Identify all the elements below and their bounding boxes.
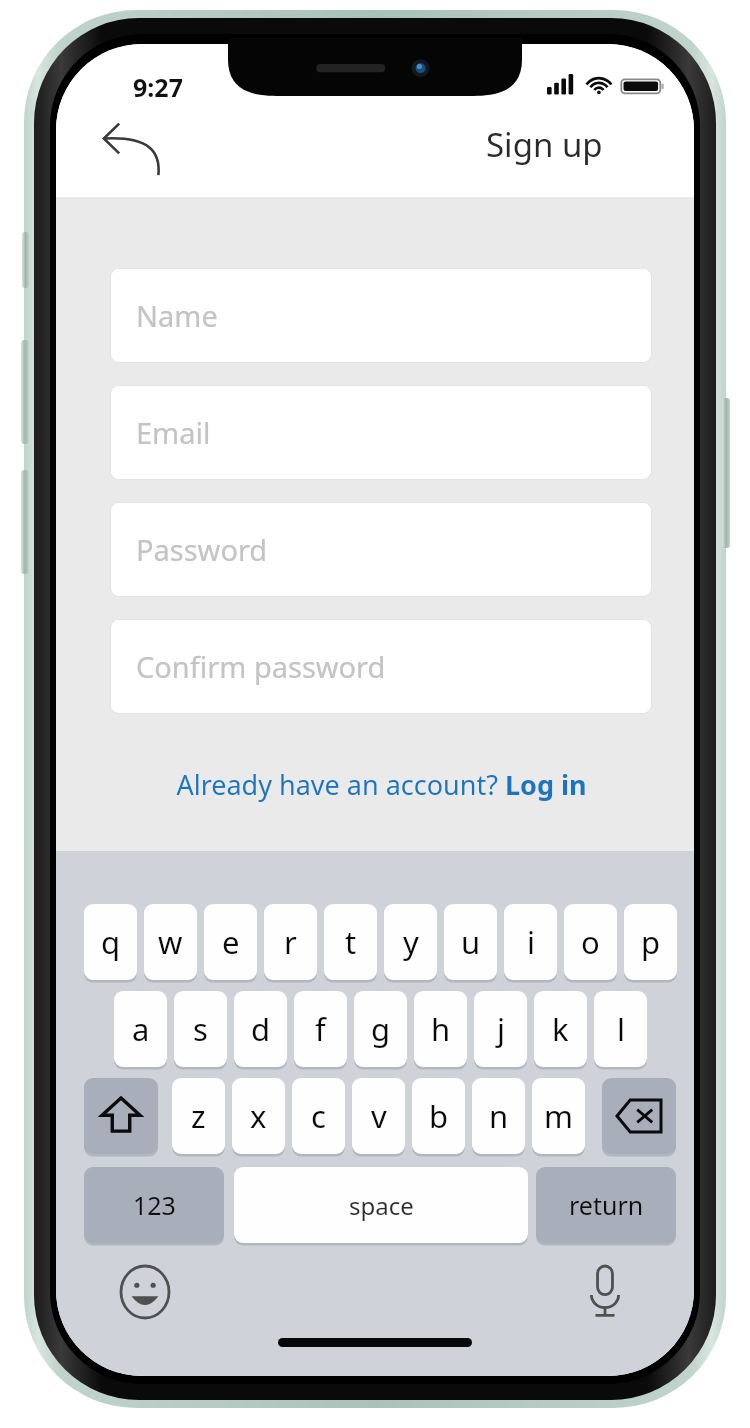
staticText: a [132,1008,150,1050]
staticText: i [527,921,535,963]
button[interactable]: w [144,904,197,980]
button[interactable]: m [532,1078,585,1154]
button[interactable]: x [232,1078,285,1154]
button[interactable]: k [534,991,587,1067]
staticText: Already have an account? Log in [176,766,587,803]
button[interactable]: Name [110,268,652,363]
staticText: 9:27 [133,70,183,104]
staticText: q [101,921,121,963]
button[interactable]: g [354,991,407,1067]
button[interactable]: p [624,904,677,980]
staticText: v [371,1095,387,1137]
staticText: s [193,1008,208,1050]
button[interactable]: r [264,904,317,980]
button[interactable]: e [204,904,257,980]
staticText: g [371,1008,391,1050]
button[interactable]: Back [94,118,164,180]
button[interactable]: c [292,1078,345,1154]
staticText: d [251,1008,271,1050]
button[interactable]: a [114,991,167,1067]
staticText: return [569,1188,644,1222]
button[interactable]: Backspace [602,1078,676,1154]
staticText: x [250,1095,267,1137]
button[interactable]: b [412,1078,465,1154]
button[interactable]: Password [110,502,652,597]
button[interactable]: f [294,991,347,1067]
button[interactable]: o [564,904,617,980]
button[interactable]: s [174,991,227,1067]
staticText: Name [136,296,218,335]
staticText: Confirm password [136,647,386,686]
button[interactable]: v [352,1078,405,1154]
button[interactable]: h [414,991,467,1067]
staticText: w [158,921,183,963]
button[interactable]: space [234,1167,528,1243]
button[interactable]: Dictation [574,1261,636,1323]
button[interactable]: l [594,991,647,1067]
button[interactable]: i [504,904,557,980]
staticText: Password [136,530,268,569]
staticText: r [284,921,297,963]
staticText: space [349,1189,414,1222]
button[interactable]: z [172,1078,225,1154]
staticText: 123 [133,1188,176,1222]
staticText: p [641,921,661,963]
staticText: b [429,1095,449,1137]
button[interactable]: d [234,991,287,1067]
staticText: Sign up [486,122,603,167]
staticText: e [222,921,240,963]
staticText: c [311,1095,326,1137]
staticText: t [345,921,357,963]
staticText: h [431,1008,451,1050]
staticText: k [552,1008,569,1050]
button[interactable]: return [536,1167,676,1243]
button[interactable]: q [84,904,137,980]
button[interactable]: Shift [84,1078,158,1154]
staticText: u [461,921,481,963]
staticText: o [581,921,600,963]
button[interactable]: Email [110,385,652,480]
staticText: Email [136,413,211,452]
button[interactable]: u [444,904,497,980]
button[interactable]: Already have an account? Log in [110,757,652,811]
button[interactable]: j [474,991,527,1067]
staticText: z [191,1095,206,1137]
staticText: n [489,1095,509,1137]
staticText: m [544,1095,573,1137]
staticText: y [403,921,419,963]
staticText: j [497,1008,505,1050]
button[interactable]: Confirm password [110,619,652,714]
button[interactable]: t [324,904,377,980]
button[interactable]: y [384,904,437,980]
staticText: l [617,1008,625,1050]
button[interactable]: 123 [84,1167,224,1243]
staticText: f [315,1008,326,1050]
button[interactable]: n [472,1078,525,1154]
button[interactable]: Emoji [114,1261,176,1323]
